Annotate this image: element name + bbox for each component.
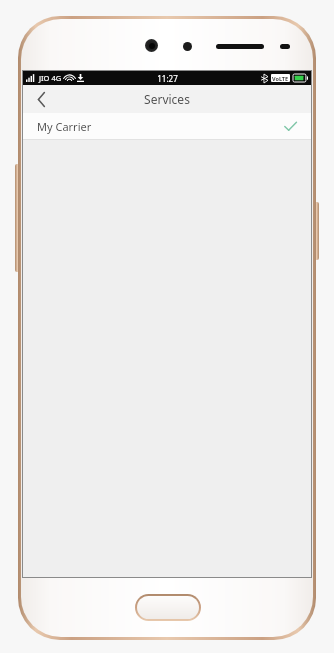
button[interactable]: Back	[23, 85, 59, 113]
staticText: My Carrier	[37, 119, 92, 134]
button[interactable]: My Carrier	[23, 113, 311, 139]
staticText: JIO 4G	[39, 73, 62, 83]
button[interactable]: Home	[135, 594, 201, 621]
staticText: 11:27	[157, 73, 178, 84]
staticText: Services	[144, 91, 190, 107]
staticText: VoLTE	[272, 75, 289, 82]
